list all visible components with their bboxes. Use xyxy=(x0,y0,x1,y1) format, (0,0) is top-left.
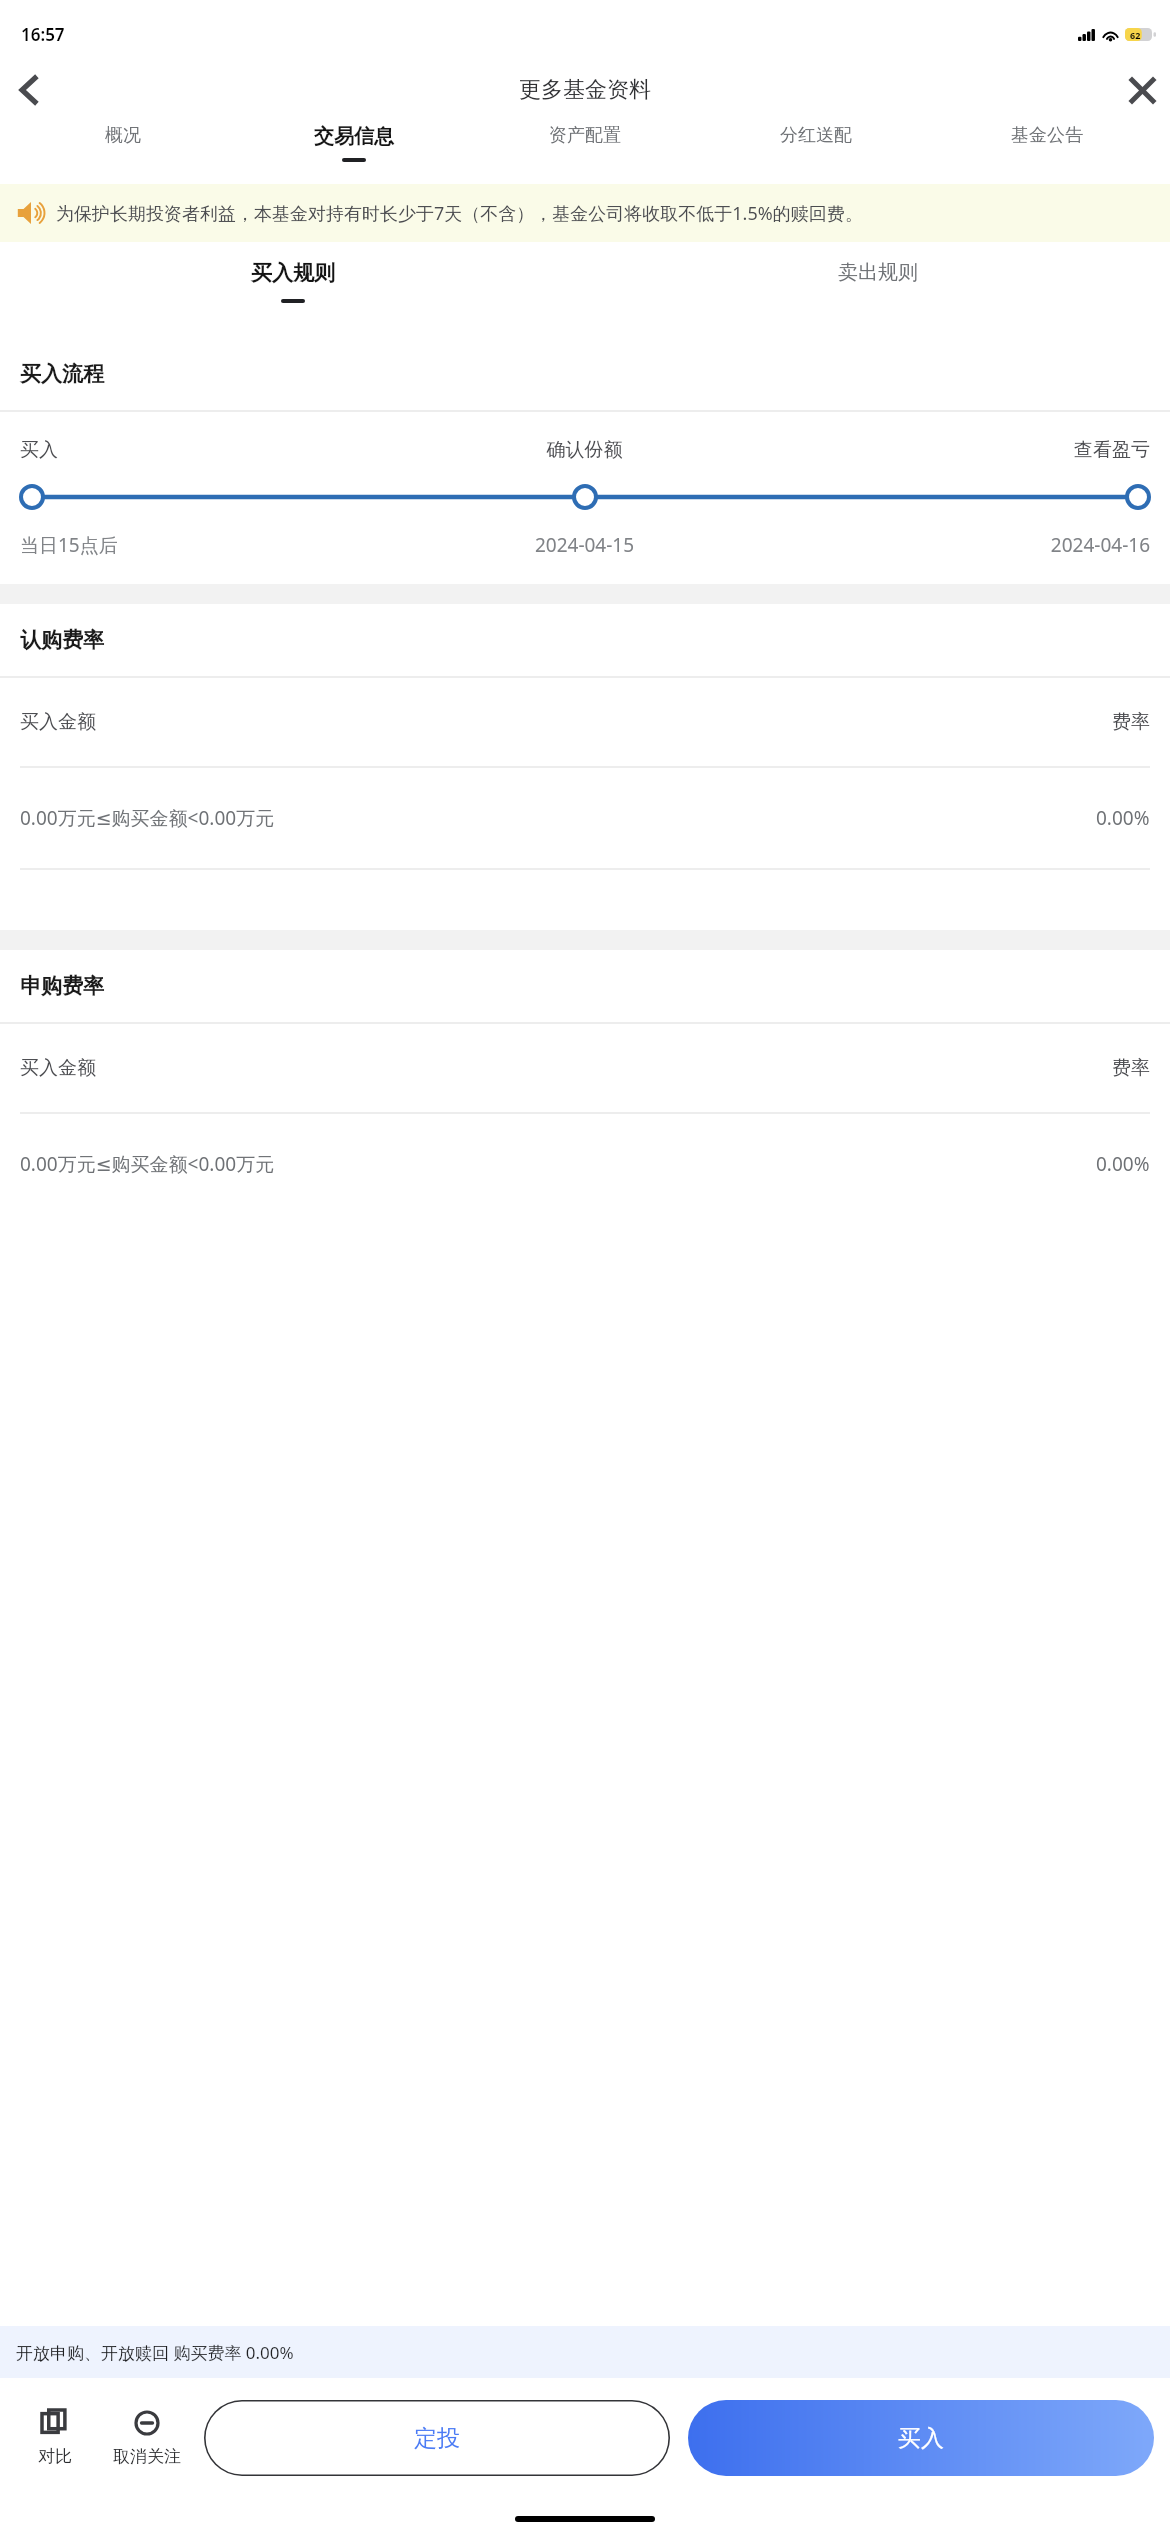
staticText: 交易信息 xyxy=(314,124,394,149)
staticText: 0.00万元≤购买金额<0.00万元 xyxy=(20,1151,1096,1177)
button[interactable]: 定投 xyxy=(204,2400,670,2476)
staticText: 为保护长期投资者利益，本基金对持有时长少于7天（不含），基金公司将收取不低于1.… xyxy=(56,201,863,226)
staticText: 2024-04-16 xyxy=(773,532,1150,558)
staticText: 当日15点后 xyxy=(20,532,396,558)
staticText: 基金公告 xyxy=(1011,124,1083,147)
button[interactable]: Back xyxy=(0,62,56,118)
staticText: 买入规则 xyxy=(251,260,335,286)
staticText: 买入流程 xyxy=(20,361,104,387)
staticText: 买入金额 xyxy=(20,1056,1112,1080)
staticText: 确认份额 xyxy=(396,438,773,462)
staticText: 费率 xyxy=(1112,710,1150,734)
staticText: 0.00万元≤购买金额<0.00万元 xyxy=(20,805,1096,831)
staticText: 2024-04-15 xyxy=(396,532,773,558)
staticText: 买入 xyxy=(898,2424,944,2453)
button[interactable]: 取消关注 xyxy=(108,2410,186,2467)
staticText: 开放申购、开放赎回 购买费率 0.00% xyxy=(16,2341,294,2364)
button[interactable]: 资产配置 xyxy=(469,118,700,184)
staticText: 取消关注 xyxy=(113,2446,181,2467)
staticText: 申购费率 xyxy=(20,973,104,999)
staticText: 买入金额 xyxy=(20,710,1112,734)
button[interactable]: 基金公告 xyxy=(931,118,1162,184)
button[interactable]: 概况 xyxy=(8,118,238,184)
staticText: 62 xyxy=(1130,29,1141,41)
staticText: 更多基金资料 xyxy=(519,76,651,104)
button[interactable]: 分红送配 xyxy=(700,118,931,184)
staticText: 定投 xyxy=(414,2424,460,2453)
staticText: 查看盈亏 xyxy=(773,438,1150,462)
staticText: 分红送配 xyxy=(780,124,852,147)
button[interactable]: 买入 xyxy=(688,2400,1154,2476)
staticText: 资产配置 xyxy=(549,124,621,147)
staticText: 概况 xyxy=(105,124,141,147)
staticText: 认购费率 xyxy=(20,627,104,653)
staticText: 卖出规则 xyxy=(838,260,918,285)
staticText: 0.00% xyxy=(1096,1151,1150,1177)
staticText: 16:57 xyxy=(21,23,65,46)
staticText: 买入 xyxy=(20,438,396,462)
button[interactable]: 买入规则 xyxy=(0,242,585,338)
button[interactable]: 交易信息 xyxy=(238,118,469,184)
staticText: 0.00% xyxy=(1096,805,1150,831)
button[interactable]: 对比 xyxy=(16,2410,94,2467)
button[interactable]: 卖出规则 xyxy=(585,242,1170,338)
staticText: 对比 xyxy=(38,2446,72,2467)
button[interactable]: Close xyxy=(1114,62,1170,118)
staticText: 费率 xyxy=(1112,1056,1150,1080)
